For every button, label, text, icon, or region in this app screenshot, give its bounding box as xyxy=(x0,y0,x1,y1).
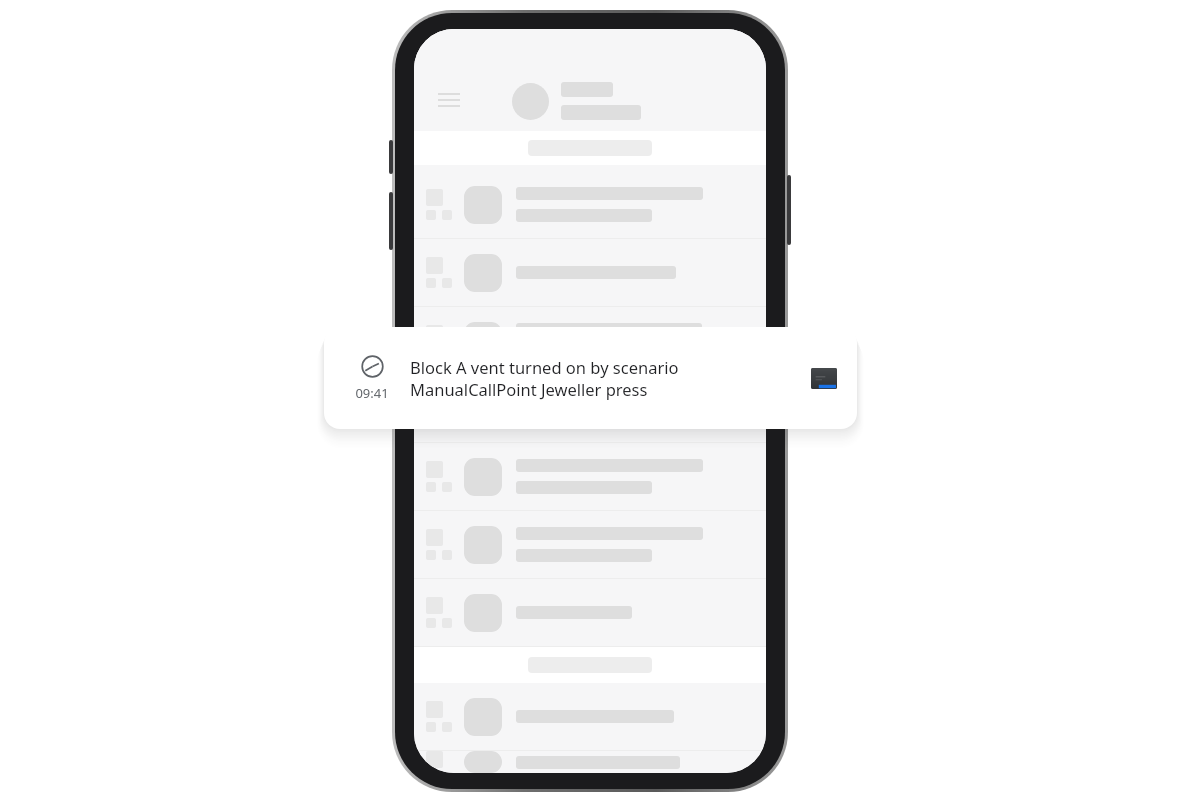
staticText: ManualCallPoint Jeweller press xyxy=(410,378,648,400)
button[interactable]: Event snapshot xyxy=(811,368,837,389)
button[interactable] xyxy=(414,375,766,442)
staticText: Block A vent turned on by scenario xyxy=(410,356,679,378)
button[interactable] xyxy=(414,171,766,238)
button[interactable] xyxy=(414,239,766,306)
button[interactable] xyxy=(414,511,766,578)
button[interactable]: Menu xyxy=(436,88,462,114)
button[interactable] xyxy=(414,683,766,750)
button[interactable] xyxy=(414,579,766,646)
button[interactable]: 09:41 xyxy=(324,327,857,429)
button[interactable] xyxy=(414,307,766,374)
staticText: 09:41 xyxy=(355,384,389,402)
button[interactable] xyxy=(414,751,766,773)
button[interactable] xyxy=(414,443,766,510)
